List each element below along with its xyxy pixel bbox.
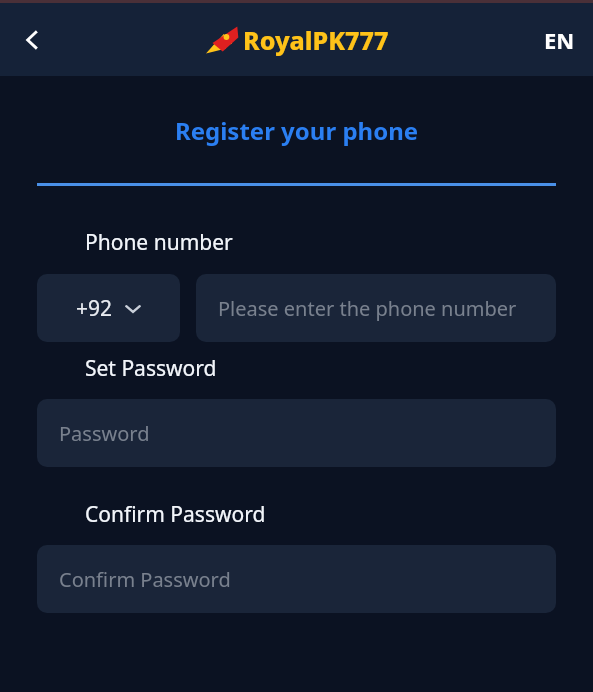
button[interactable]: Confirm Password: [37, 545, 556, 613]
staticText: Confirm Password: [59, 566, 231, 593]
button[interactable]: EN: [538, 17, 581, 63]
button[interactable]: RoyalPK777: [205, 23, 389, 57]
staticText: Please enter the phone number: [218, 295, 517, 322]
staticText: Set Password: [85, 354, 217, 383]
staticText: RoyalPK777: [243, 23, 389, 57]
staticText: Register your phone: [0, 114, 593, 147]
button[interactable]: Please enter the phone number: [196, 274, 556, 342]
staticText: Phone number: [85, 228, 233, 257]
button[interactable]: +92: [37, 274, 180, 342]
button[interactable]: Back: [8, 16, 56, 64]
staticText: Password: [59, 420, 150, 447]
staticText: EN: [544, 25, 575, 55]
button[interactable]: Password: [37, 399, 556, 467]
staticText: +92: [76, 294, 113, 323]
staticText: Confirm Password: [85, 500, 266, 529]
